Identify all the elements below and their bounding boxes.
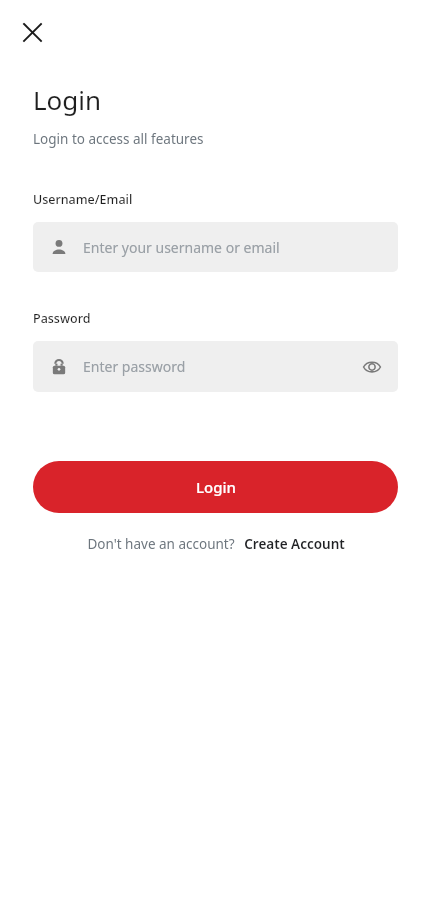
staticText: Login bbox=[196, 477, 236, 497]
button[interactable]: Close bbox=[14, 14, 50, 50]
staticText: Login bbox=[33, 82, 102, 117]
button[interactable]: Create Account bbox=[244, 535, 345, 553]
staticText: Login to access all features bbox=[33, 130, 204, 148]
button[interactable]: Enter your username or email bbox=[33, 222, 398, 272]
button[interactable]: Login bbox=[33, 461, 398, 513]
staticText: Username/Email bbox=[33, 191, 133, 208]
button[interactable]: Show password bbox=[356, 351, 388, 383]
staticText: Password bbox=[33, 310, 91, 327]
staticText: Enter your username or email bbox=[83, 238, 280, 257]
button[interactable]: Enter password bbox=[33, 341, 398, 392]
staticText: Create Account bbox=[244, 535, 345, 553]
staticText: Enter password bbox=[83, 357, 356, 376]
staticText: Don't have an account? bbox=[87, 535, 235, 553]
